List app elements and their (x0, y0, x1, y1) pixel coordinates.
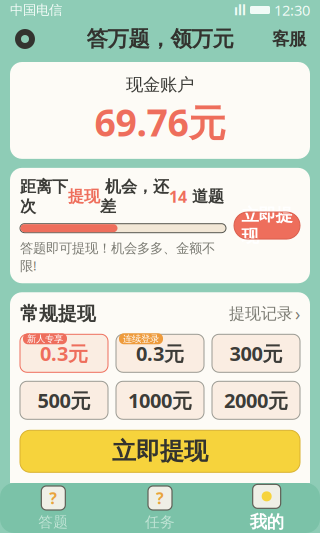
button[interactable]: 我的 (213, 483, 320, 533)
staticText: 连续登录 (123, 333, 159, 344)
staticText: 答题 (38, 513, 68, 531)
staticText: 立即提现 (241, 204, 292, 247)
staticText: ıll (234, 1, 246, 19)
button[interactable]: ? (107, 483, 213, 533)
button[interactable]: 0.3元 (20, 334, 108, 372)
staticText: 0.3元 (136, 340, 184, 367)
staticText: ? (156, 487, 164, 509)
staticText: 答题即可提现！机会多多、金额不限! (20, 240, 215, 274)
button[interactable]: 设置 (8, 22, 42, 56)
staticText: 客服 (272, 28, 306, 50)
staticText: 0.3元 (40, 340, 88, 367)
button[interactable]: 500元 (20, 381, 108, 419)
staticText: 新手专享，答对5道题即可领取 (20, 509, 223, 529)
staticText: 12:30 (274, 0, 310, 20)
button[interactable]: 客服 (266, 22, 312, 56)
staticText: ? (49, 487, 57, 509)
staticText: 答万题，领万元 (86, 26, 233, 52)
staticText: 我的 (250, 511, 284, 533)
button[interactable]: 立即提现 (234, 212, 300, 239)
staticText: 提现 (68, 187, 100, 206)
staticText: 任务 (145, 513, 175, 531)
staticText: 14 (169, 186, 187, 207)
button[interactable]: 2000元 (212, 381, 300, 419)
staticText: 立即提现 (112, 436, 208, 466)
staticText: 机会，还差 (100, 177, 169, 216)
staticText: 69.76元 (94, 97, 225, 147)
button[interactable]: ? (0, 483, 107, 533)
staticText: 距离下次 (20, 177, 68, 216)
staticText: 500元 (37, 387, 90, 414)
button[interactable]: 提现记录 (229, 302, 300, 325)
staticText: 新人专享 (27, 333, 63, 344)
button[interactable]: 立即提现 (20, 430, 300, 472)
staticText: 现金账户 (126, 74, 194, 95)
staticText: 300元 (229, 340, 282, 367)
staticText: 道题 (187, 187, 224, 206)
button[interactable]: 300元 (212, 334, 300, 372)
staticText: 提现记录 (229, 304, 293, 324)
button[interactable]: 1000元 (116, 381, 204, 419)
staticText: › (295, 302, 300, 325)
button[interactable]: 0.3元 (116, 334, 204, 372)
staticText: 中国电信 (10, 2, 62, 18)
staticText: 常规提现 (20, 302, 96, 325)
staticText: 1000元 (128, 387, 192, 414)
staticText: 2000元 (224, 387, 288, 414)
staticText: 0.03元提现说明 (20, 483, 131, 504)
